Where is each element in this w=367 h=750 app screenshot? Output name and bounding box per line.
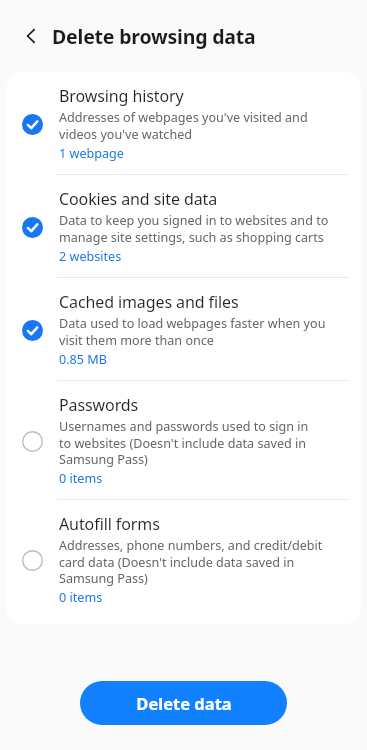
staticText: 0 items	[59, 589, 103, 606]
staticText: Cookies and site data	[59, 188, 218, 210]
button[interactable]: Cookies and site data	[6, 175, 361, 277]
staticText: Passwords	[59, 394, 139, 416]
staticText: 2 websites	[59, 248, 122, 265]
staticText: Addresses, phone numbers, and credit/deb…	[59, 537, 323, 587]
staticText: Cached images and files	[59, 291, 239, 313]
button[interactable]: Autofill forms	[6, 500, 361, 618]
button[interactable]: Back	[14, 19, 48, 53]
staticText: Delete data	[136, 692, 232, 714]
staticText: Browsing history	[59, 85, 184, 107]
button[interactable]: Passwords	[6, 381, 361, 499]
button[interactable]: Delete data	[80, 681, 287, 725]
staticText: 1 webpage	[59, 145, 124, 162]
button[interactable]: Cached images and files	[6, 278, 361, 380]
staticText: Autofill forms	[59, 513, 160, 535]
staticText: 0 items	[59, 470, 103, 487]
staticText: Delete browsing data	[52, 23, 256, 50]
staticText: Data to keep you signed in to websites a…	[59, 212, 329, 246]
staticText: 0.85 MB	[59, 351, 107, 368]
staticText: Addresses of webpages you've visited and…	[59, 109, 308, 143]
staticText: Usernames and passwords used to sign in …	[59, 418, 309, 468]
staticText: Data used to load webpages faster when y…	[59, 315, 326, 349]
button[interactable]: Browsing history	[6, 72, 361, 174]
